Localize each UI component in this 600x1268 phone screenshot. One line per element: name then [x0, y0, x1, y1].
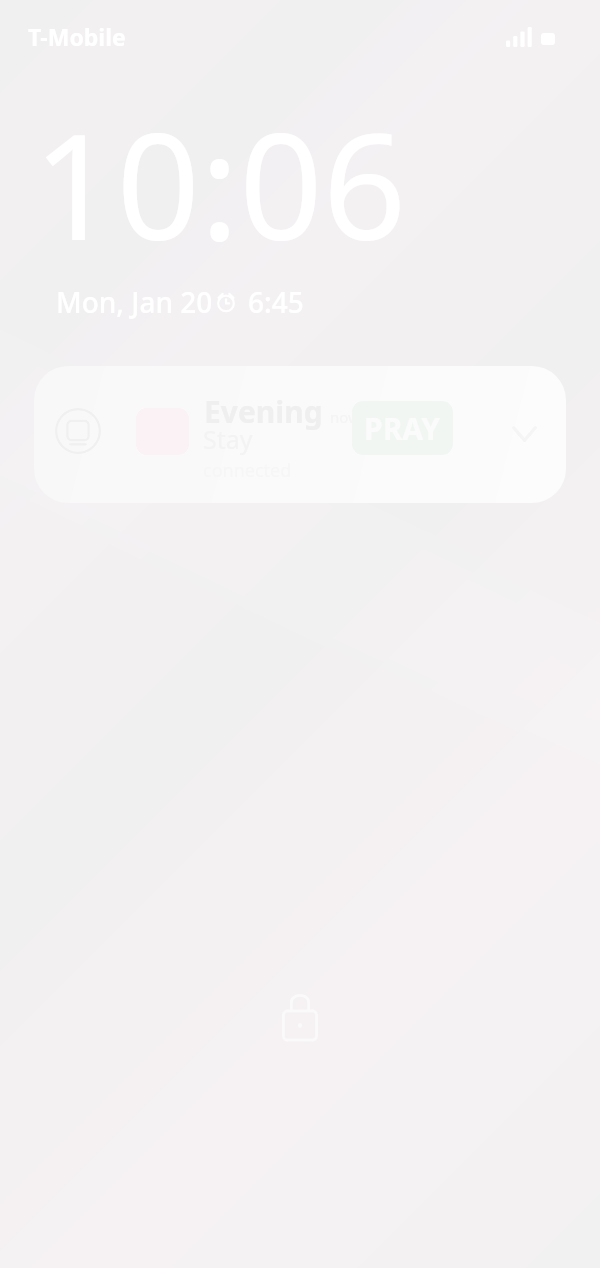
- button[interactable]: Evening: [34, 366, 566, 503]
- other: Locked: [282, 991, 318, 1041]
- staticText: now: [330, 407, 360, 427]
- staticText: T-Mobile: [28, 21, 126, 52]
- staticText: 10:06: [33, 84, 407, 283]
- staticText: 6:45: [248, 283, 304, 321]
- other: Expand: [512, 426, 537, 442]
- staticText: Mon, Jan 20: [56, 283, 213, 321]
- staticText: Evening: [204, 391, 323, 432]
- other: Alarm: [215, 291, 237, 313]
- button[interactable]: PRAY: [352, 401, 453, 455]
- staticText: PRAY: [364, 408, 441, 449]
